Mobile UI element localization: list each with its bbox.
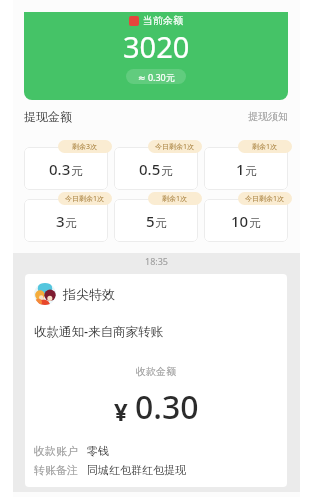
staticText: 剩余1次 <box>252 142 278 152</box>
staticText: 零钱 <box>87 444 109 458</box>
staticText: 提现须知 <box>248 110 288 123</box>
button[interactable]: 0.3 <box>24 147 108 190</box>
staticText: 收款金额 <box>136 365 176 378</box>
staticText: 今日剩余1次 <box>65 194 105 204</box>
button[interactable]: 指尖特效 <box>25 274 287 487</box>
staticText: 0.3 <box>49 159 71 179</box>
staticText: 剩余1次 <box>162 194 188 204</box>
staticText: 转账备注 <box>34 463 78 477</box>
button[interactable]: 0.5 <box>114 147 198 190</box>
button[interactable]: 提现须知 <box>248 110 288 123</box>
staticText: 10 <box>231 211 249 231</box>
staticText: 18:35 <box>13 255 300 267</box>
staticText: 元 <box>249 216 261 230</box>
button[interactable]: 10 <box>204 199 288 242</box>
staticText: 3020 <box>123 27 190 66</box>
staticText: 指尖特效 <box>63 286 115 302</box>
staticText: 收款通知-来自商家转账 <box>34 323 164 340</box>
staticText: ¥ <box>114 395 128 428</box>
staticText: 今日剩余1次 <box>155 142 195 152</box>
button[interactable]: 1 <box>204 147 288 190</box>
staticText: ≈ 0.30元 <box>138 71 175 83</box>
staticText: 元 <box>161 164 173 178</box>
staticText: 0.5 <box>139 159 161 179</box>
staticText: 收款账户 <box>34 444 78 458</box>
staticText: 1 <box>236 159 245 179</box>
staticText: 同城红包群红包提现 <box>87 463 186 477</box>
button[interactable]: 5 <box>114 199 198 242</box>
staticText: 当前余额 <box>143 14 183 27</box>
staticText: 剩余3次 <box>72 142 98 152</box>
staticText: 元 <box>71 164 83 178</box>
staticText: 今日剩余1次 <box>245 194 285 204</box>
staticText: 元 <box>65 216 77 230</box>
staticText: 0.30 <box>135 385 199 429</box>
staticText: 元 <box>245 164 257 178</box>
button[interactable]: 3 <box>24 199 108 242</box>
staticText: 元 <box>155 216 167 230</box>
staticText: 5 <box>146 211 155 231</box>
staticText: 提现金额 <box>24 109 72 124</box>
staticText: 3 <box>56 211 65 231</box>
